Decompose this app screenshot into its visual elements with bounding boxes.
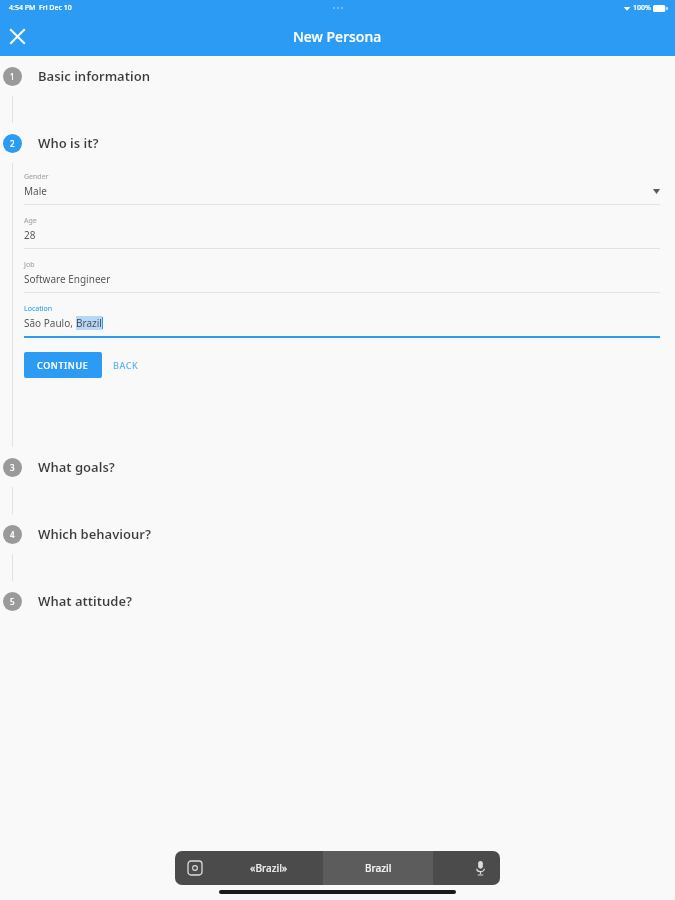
staticText: 100%	[633, 3, 651, 13]
staticText: Location	[24, 304, 53, 314]
button[interactable]: Brazil	[323, 851, 433, 885]
button[interactable]: Emoji keyboard	[175, 851, 215, 885]
button[interactable]: 5	[0, 581, 675, 621]
button[interactable]: CONTINUE	[24, 352, 102, 378]
button[interactable]: 1	[0, 56, 675, 96]
staticText: 4	[10, 529, 15, 540]
staticText: Brazil	[76, 316, 102, 330]
staticText: New Persona	[293, 27, 382, 46]
button[interactable]: Voice input	[460, 851, 500, 885]
staticText: 1	[10, 71, 15, 82]
staticText: Brazil	[365, 861, 392, 875]
button[interactable]: BACK	[102, 352, 150, 378]
staticText: 5	[10, 596, 15, 607]
staticText: What attitude?	[38, 592, 133, 610]
staticText: Software Engineer	[24, 272, 660, 286]
button[interactable]: «Brazil»	[215, 851, 323, 885]
staticText: Job	[24, 260, 35, 270]
staticText: 28	[24, 228, 660, 242]
staticText: 4:54 PM	[9, 3, 36, 13]
staticText: BACK	[113, 359, 139, 371]
staticText: «Brazil»	[250, 861, 288, 875]
button[interactable]: Close	[0, 19, 34, 53]
staticText: São Paulo,	[24, 316, 76, 330]
staticText: Fri Dec 10	[39, 3, 72, 13]
staticText: Basic information	[38, 67, 150, 85]
button[interactable]: 4	[0, 514, 675, 554]
staticText: 2	[10, 138, 15, 149]
staticText: CONTINUE	[37, 359, 89, 371]
staticText: Who is it?	[38, 134, 99, 152]
staticText: 3	[10, 462, 15, 473]
staticText: What goals?	[38, 458, 115, 476]
staticText: Which behaviour?	[38, 525, 151, 543]
staticText: Gender	[24, 172, 49, 182]
button[interactable]: 2	[0, 123, 675, 163]
staticText: Age	[24, 216, 37, 226]
staticText: Male	[24, 184, 653, 198]
button[interactable]: 3	[0, 447, 675, 487]
